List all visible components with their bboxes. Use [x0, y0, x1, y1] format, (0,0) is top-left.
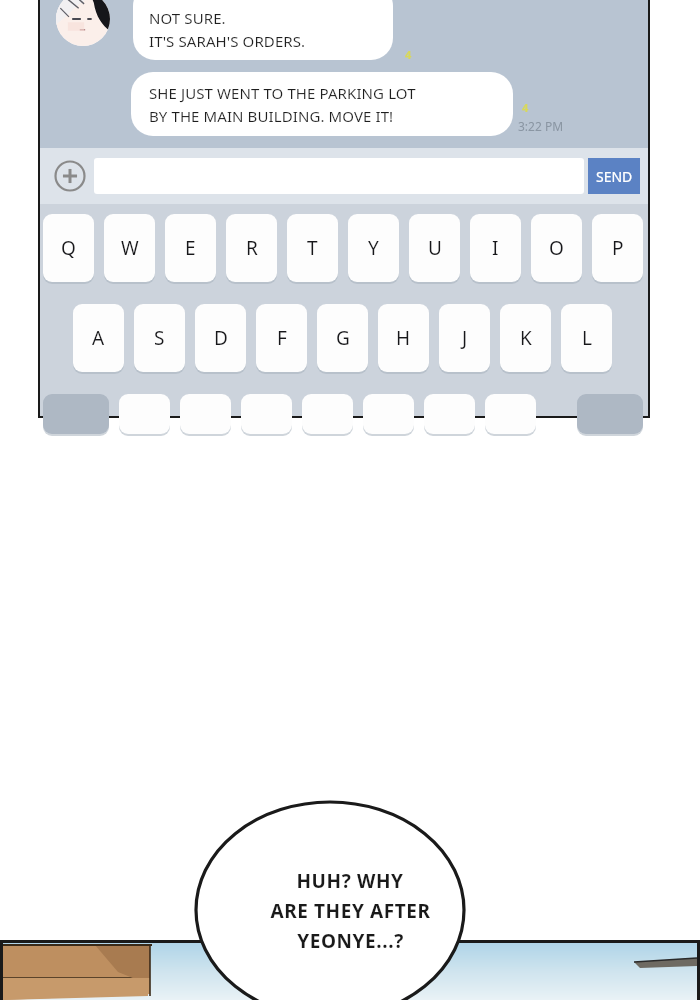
- staticText: I: [492, 235, 499, 261]
- button[interactable]: Key: [119, 394, 170, 434]
- staticText: 3:22 PM: [518, 118, 564, 134]
- button[interactable]: Key: [577, 394, 643, 434]
- staticText: W: [121, 235, 139, 261]
- staticText: BY THE MAIN BUILDING. MOVE IT!: [149, 106, 394, 126]
- button[interactable]: L: [561, 304, 612, 372]
- staticText: H: [396, 325, 411, 351]
- button[interactable]: Add attachment: [48, 154, 92, 198]
- staticText: E: [185, 235, 196, 261]
- button[interactable]: Key: [424, 394, 475, 434]
- button[interactable]: K: [500, 304, 551, 372]
- button[interactable]: E: [165, 214, 216, 282]
- button[interactable]: F: [256, 304, 307, 372]
- button[interactable]: O: [531, 214, 582, 282]
- staticText: P: [612, 235, 624, 261]
- button[interactable]: Y: [348, 214, 399, 282]
- staticText: R: [246, 235, 258, 261]
- staticText: J: [462, 325, 468, 351]
- button[interactable]: D: [195, 304, 246, 372]
- staticText: IT'S SARAH'S ORDERS.: [149, 31, 306, 51]
- staticText: HUH? WHY: [296, 868, 404, 894]
- button[interactable]: Key: [43, 394, 109, 434]
- button[interactable]: T: [287, 214, 338, 282]
- staticText: YEONYE...?: [297, 928, 404, 954]
- staticText: U: [428, 235, 442, 261]
- button[interactable]: H: [378, 304, 429, 372]
- button[interactable]: Key: [485, 394, 536, 434]
- staticText: F: [277, 325, 287, 351]
- staticText: O: [549, 235, 564, 261]
- staticText: S: [154, 325, 165, 351]
- staticText: K: [520, 325, 532, 351]
- staticText: L: [582, 325, 592, 351]
- staticText: 4: [405, 47, 412, 62]
- button[interactable]: S: [134, 304, 185, 372]
- staticText: SHE JUST WENT TO THE PARKING LOT: [149, 83, 416, 103]
- staticText: Q: [61, 235, 76, 261]
- staticText: Y: [368, 235, 379, 261]
- button[interactable]: A: [73, 304, 124, 372]
- button[interactable]: J: [439, 304, 490, 372]
- button[interactable]: Key: [180, 394, 231, 434]
- button[interactable]: P: [592, 214, 643, 282]
- staticText: T: [307, 235, 318, 261]
- staticText: D: [214, 325, 228, 351]
- button[interactable]: G: [317, 304, 368, 372]
- button[interactable]: Key: [241, 394, 292, 434]
- staticText: 4: [522, 100, 529, 115]
- button[interactable]: W: [104, 214, 155, 282]
- button[interactable]: R: [226, 214, 277, 282]
- button[interactable]: I: [470, 214, 521, 282]
- button[interactable]: Q: [43, 214, 94, 282]
- staticText: NOT SURE.: [149, 8, 226, 28]
- staticText: G: [336, 325, 350, 351]
- staticText: A: [92, 325, 105, 351]
- button[interactable]: Key: [363, 394, 414, 434]
- button[interactable]: U: [409, 214, 460, 282]
- staticText: ARE THEY AFTER: [270, 898, 431, 924]
- button[interactable]: SEND: [588, 158, 640, 194]
- button[interactable]: Key: [302, 394, 353, 434]
- staticText: SEND: [596, 167, 633, 186]
